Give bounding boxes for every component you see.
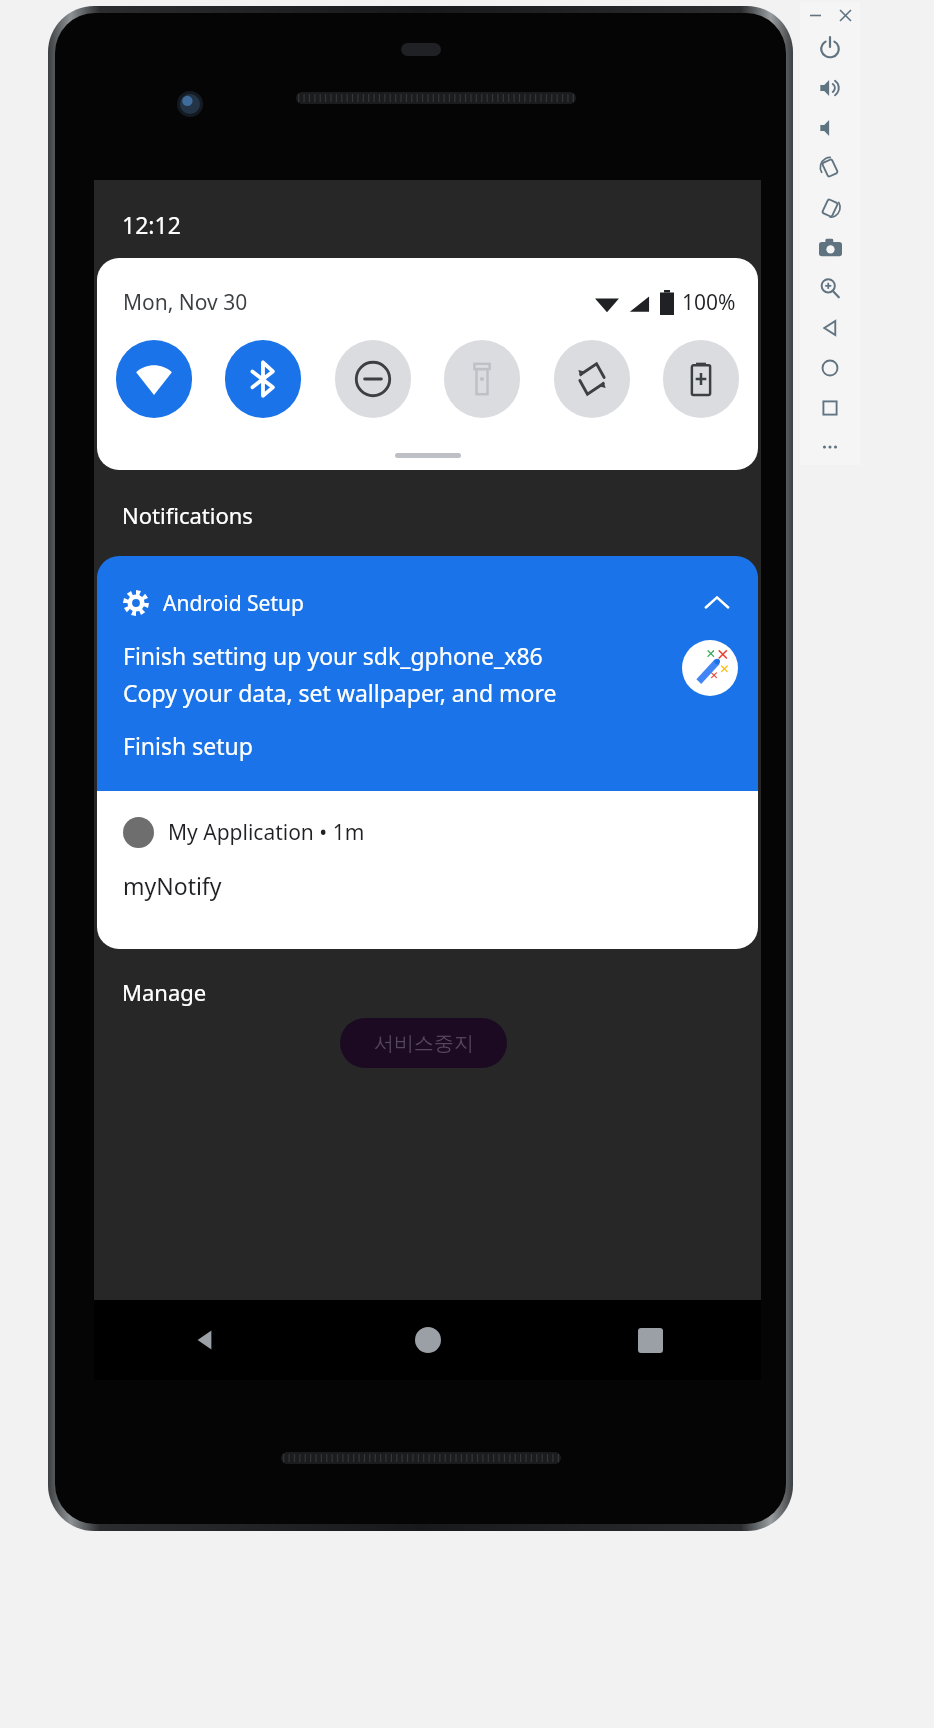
- staticText: Android Setup: [163, 589, 304, 618]
- staticText: Manage: [122, 977, 207, 1007]
- button[interactable]: More: [800, 428, 860, 465]
- button[interactable]: Battery saver: [663, 340, 739, 418]
- button[interactable]: Rotate right: [800, 188, 860, 228]
- button[interactable]: Android Setup: [97, 556, 758, 791]
- staticText: Mon, Nov 30: [123, 288, 248, 317]
- button[interactable]: Volume up: [800, 68, 860, 108]
- staticText: Finish setting up your sdk_gphone_x86: [123, 640, 543, 671]
- button[interactable]: Recent apps: [539, 1300, 761, 1380]
- button[interactable]: Bluetooth: [225, 340, 301, 418]
- button[interactable]: Home: [317, 1300, 539, 1380]
- staticText: 100%: [682, 288, 736, 317]
- button[interactable]: Back: [94, 1300, 317, 1380]
- button[interactable]: Volume down: [800, 108, 860, 148]
- button[interactable]: Collapse: [698, 584, 736, 622]
- staticText: 서비스중지: [374, 1031, 474, 1056]
- staticText: My Application • 1m: [168, 818, 365, 847]
- button[interactable]: Flashlight: [444, 340, 520, 418]
- staticText: Copy your data, set wallpaper, and more: [123, 677, 557, 708]
- staticText: Finish setup: [123, 730, 253, 761]
- button[interactable]: Finish setup: [123, 730, 253, 761]
- button[interactable]: Overview: [800, 388, 860, 428]
- button[interactable]: Auto-rotate: [554, 340, 630, 418]
- button[interactable]: My Application • 1m: [97, 791, 758, 949]
- button[interactable]: Power: [800, 28, 860, 68]
- staticText: myNotify: [123, 870, 222, 901]
- button[interactable]: Minimize: [804, 4, 826, 26]
- button[interactable]: Close: [834, 4, 856, 26]
- button[interactable]: Do not disturb: [335, 340, 411, 418]
- button[interactable]: Zoom: [800, 268, 860, 308]
- button[interactable]: Back: [800, 308, 860, 348]
- button[interactable]: Take screenshot: [800, 228, 860, 268]
- staticText: 12:12: [122, 209, 181, 240]
- button[interactable]: Rotate left: [800, 148, 860, 188]
- button[interactable]: 서비스중지: [340, 1018, 507, 1068]
- button[interactable]: Manage: [122, 977, 207, 1007]
- button[interactable]: Home: [800, 348, 860, 388]
- button[interactable]: Wi-Fi: [116, 340, 192, 418]
- staticText: Notifications: [122, 500, 253, 530]
